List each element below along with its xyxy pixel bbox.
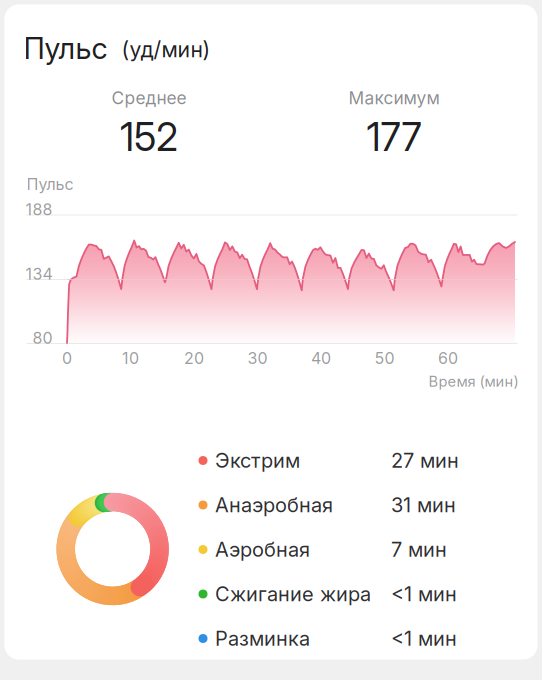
- staticText: 177: [366, 113, 421, 160]
- staticText: 80: [32, 328, 52, 348]
- staticText: Сжигание жира: [215, 582, 371, 606]
- staticText: 40: [311, 348, 331, 368]
- staticText: Время (мин): [428, 372, 518, 390]
- button[interactable]: Экстрим: [4, 438, 537, 482]
- staticText: 31 мин: [391, 493, 456, 517]
- staticText: 20: [184, 348, 204, 368]
- staticText: Экстрим: [215, 448, 300, 473]
- staticText: 27 мин: [391, 448, 459, 473]
- staticText: Пульс: [23, 30, 107, 66]
- staticText: 10: [122, 348, 139, 368]
- staticText: (уд/мин): [121, 36, 210, 62]
- staticText: 188: [25, 200, 52, 219]
- button[interactable]: Разминка: [4, 616, 537, 660]
- staticText: Разминка: [215, 626, 310, 651]
- staticText: Анаэробная: [215, 493, 333, 517]
- staticText: Пульс: [26, 174, 73, 194]
- staticText: <1 мин: [391, 626, 457, 651]
- staticText: 7 мин: [391, 537, 447, 562]
- button[interactable]: Сжигание жира: [4, 572, 537, 616]
- staticText: Аэробная: [215, 537, 310, 562]
- staticText: 134: [25, 264, 52, 284]
- staticText: 152: [120, 113, 178, 160]
- staticText: Максимум: [348, 87, 439, 108]
- staticText: <1 мин: [391, 582, 457, 606]
- staticText: 60: [438, 348, 458, 368]
- button[interactable]: Аэробная: [4, 527, 537, 571]
- staticText: 30: [247, 348, 267, 368]
- staticText: 0: [62, 348, 72, 368]
- staticText: Среднее: [111, 87, 186, 108]
- button[interactable]: Анаэробная: [4, 483, 537, 527]
- staticText: 50: [374, 348, 394, 368]
